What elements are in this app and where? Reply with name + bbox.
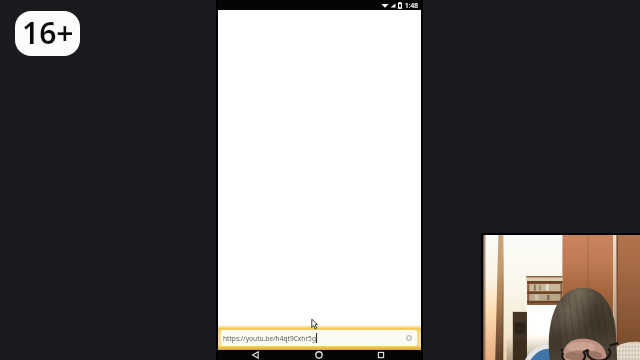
button[interactable]: https://youtu.be/h4qt9Cxhr5g bbox=[218, 325, 421, 350]
button[interactable]: Recent apps bbox=[371, 350, 391, 360]
button[interactable]: Back bbox=[245, 350, 265, 360]
staticText: https://youtu.be/h4qt9Cxhr5g bbox=[223, 334, 316, 343]
staticText: 1:48 bbox=[405, 1, 418, 10]
staticText: 16+ bbox=[22, 12, 74, 53]
button[interactable]: 16+ bbox=[15, 11, 80, 56]
button[interactable]: Home bbox=[309, 350, 329, 360]
